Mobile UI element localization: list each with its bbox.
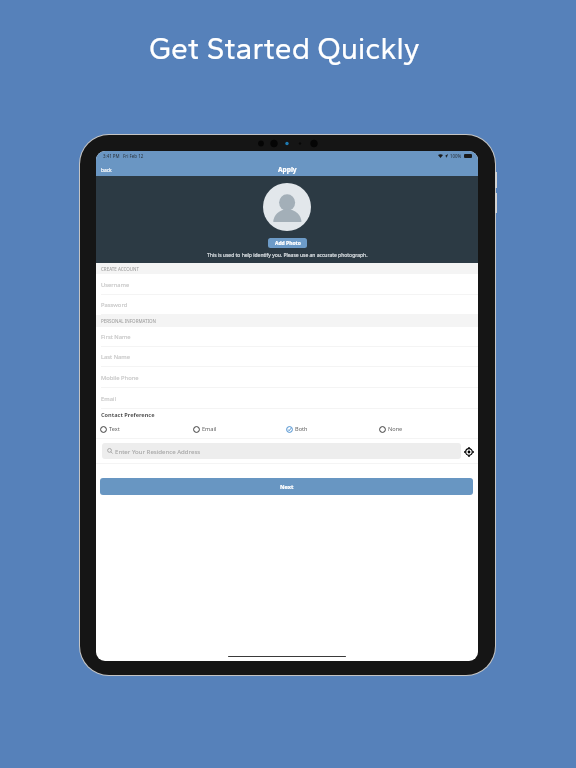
staticText: 3:41 PM Fri Feb 12 bbox=[103, 153, 144, 159]
staticText: Contact Preference bbox=[101, 411, 155, 419]
staticText: This is used to help identify you. Pleas… bbox=[207, 252, 368, 259]
staticText: Password bbox=[101, 301, 128, 309]
button[interactable]: Add Photo bbox=[268, 238, 307, 248]
button[interactable]: First Name bbox=[96, 327, 478, 347]
staticText: Mobile Phone bbox=[101, 374, 139, 382]
staticText: Apply bbox=[278, 165, 297, 174]
button[interactable]: Use my location bbox=[462, 445, 475, 458]
staticText: Next bbox=[280, 483, 294, 491]
button[interactable]: None bbox=[379, 425, 478, 433]
button[interactable]: back bbox=[96, 165, 115, 176]
button[interactable]: Password bbox=[96, 295, 478, 315]
staticText: Username bbox=[101, 281, 130, 289]
button[interactable]: Both bbox=[286, 425, 379, 433]
staticText: Last Name bbox=[101, 353, 131, 361]
staticText: 100% bbox=[450, 153, 462, 159]
staticText: First Name bbox=[101, 333, 131, 341]
button[interactable]: Text bbox=[100, 425, 193, 433]
staticText: PERSONAL INFORMATION bbox=[101, 318, 157, 324]
staticText: Get Started Quickly bbox=[149, 30, 420, 66]
button[interactable]: Email bbox=[193, 425, 286, 433]
staticText: CREATE ACCOUNT bbox=[101, 266, 139, 272]
button[interactable]: Next bbox=[100, 478, 473, 495]
staticText: None bbox=[388, 425, 403, 433]
button[interactable]: Enter Your Residence Address bbox=[102, 443, 461, 459]
staticText: Text bbox=[109, 425, 120, 433]
button[interactable]: Username bbox=[96, 274, 478, 295]
staticText: Email bbox=[101, 395, 116, 403]
button[interactable]: Last Name bbox=[96, 347, 478, 367]
staticText: Email bbox=[202, 425, 217, 433]
button[interactable]: Mobile Phone bbox=[96, 367, 478, 388]
button[interactable]: Email bbox=[96, 388, 478, 409]
staticText: Enter Your Residence Address bbox=[115, 447, 201, 455]
staticText: Both bbox=[295, 425, 308, 433]
staticText: Add Photo bbox=[275, 240, 301, 247]
